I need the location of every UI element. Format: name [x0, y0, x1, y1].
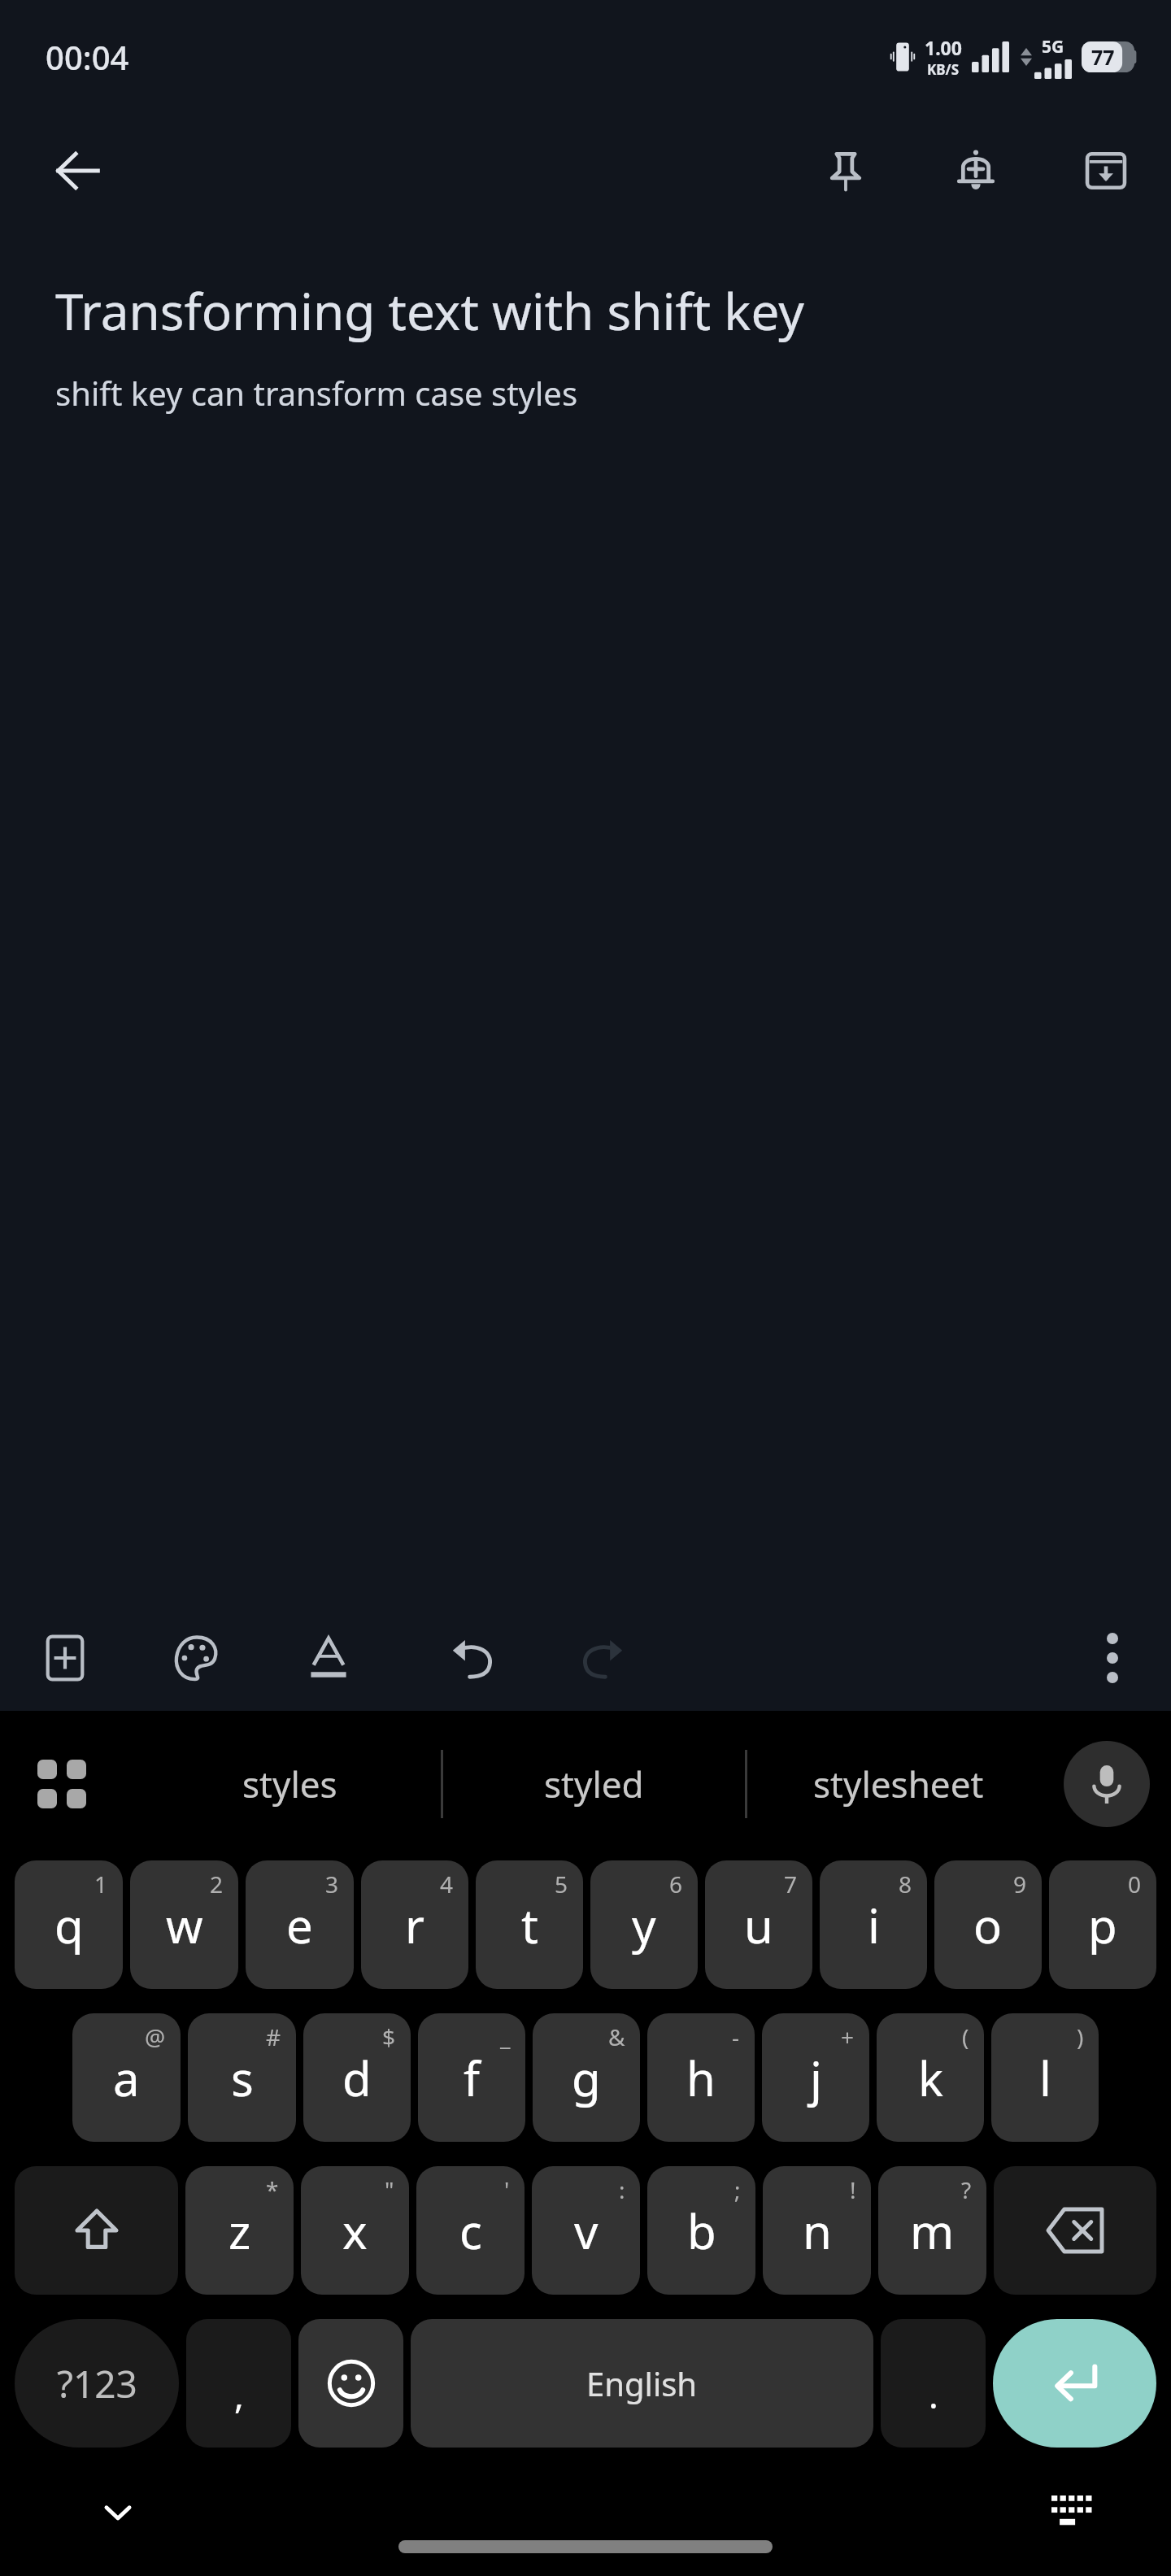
staticText: 00:04 [46, 35, 129, 79]
staticText: z [229, 2199, 251, 2263]
button[interactable]: Space [411, 2319, 873, 2448]
staticText: shift key can transform case styles [55, 371, 578, 415]
staticText: 7 [784, 1869, 798, 1899]
button[interactable]: Enter [993, 2319, 1156, 2448]
button[interactable]: Emoji [298, 2319, 403, 2448]
button[interactable]: u [705, 1860, 812, 1989]
button[interactable]: Shift [15, 2166, 178, 2295]
staticText: 6 [669, 1869, 683, 1899]
staticText: o [973, 1893, 1003, 1957]
button[interactable]: Undo [431, 1617, 512, 1699]
button[interactable]: l [991, 2013, 1099, 2142]
button[interactable]: More options [1072, 1617, 1153, 1699]
staticText: & [608, 2021, 625, 2052]
staticText: w [166, 1893, 203, 1957]
button[interactable]: x [301, 2166, 409, 2295]
button[interactable]: Background colour [156, 1617, 237, 1699]
staticText: 1 [94, 1869, 108, 1899]
button[interactable]: d [303, 2013, 411, 2142]
button[interactable]: g [533, 2013, 640, 2142]
staticText: , [234, 2370, 244, 2419]
button[interactable]: Pin [803, 128, 888, 213]
staticText: a [113, 2046, 140, 2110]
button[interactable]: j [762, 2013, 869, 2142]
staticText: e [286, 1893, 313, 1957]
staticText: k [918, 2046, 943, 2110]
button[interactable]: Redo [563, 1617, 644, 1699]
button[interactable]: b [647, 2166, 755, 2295]
staticText: 3 [325, 1869, 339, 1899]
button[interactable]: m [878, 2166, 986, 2295]
staticText: b [687, 2199, 716, 2263]
staticText: English [586, 2361, 698, 2405]
staticText: Transforming text with shift key [55, 276, 804, 345]
staticText: @ [145, 2021, 166, 2052]
staticText: c [459, 2199, 482, 2263]
staticText: _ [500, 2021, 511, 2052]
staticText: s [231, 2046, 254, 2110]
staticText: ! [850, 2174, 856, 2205]
button[interactable]: c [416, 2166, 525, 2295]
staticText: styled [544, 1760, 644, 1808]
staticText: t [521, 1893, 538, 1957]
button[interactable]: Symbols [15, 2319, 179, 2448]
button[interactable]: r [361, 1860, 468, 1989]
staticText: j [810, 2046, 822, 2110]
button[interactable]: Comma [186, 2319, 291, 2448]
button[interactable]: Archive [1064, 128, 1148, 213]
button[interactable]: k [877, 2013, 984, 2142]
staticText: q [54, 1893, 84, 1957]
staticText: n [803, 2199, 832, 2263]
staticText: " [385, 2174, 394, 2205]
button[interactable]: Period [881, 2319, 986, 2448]
button[interactable]: Add [24, 1617, 106, 1699]
button[interactable]: o [934, 1860, 1042, 1989]
staticText: u [744, 1893, 773, 1957]
button[interactable]: Text format [288, 1617, 369, 1699]
button[interactable]: stylesheet [747, 1711, 1049, 1857]
button[interactable]: n [763, 2166, 871, 2295]
button[interactable]: h [647, 2013, 755, 2142]
staticText: d [342, 2046, 372, 2110]
staticText: g [572, 2046, 601, 2110]
button[interactable]: w [130, 1860, 238, 1989]
staticText: 77 [1091, 43, 1115, 71]
button[interactable]: p [1049, 1860, 1156, 1989]
button[interactable]: Hide keyboard [81, 2475, 155, 2548]
staticText: x [342, 2199, 368, 2263]
button[interactable]: i [820, 1860, 927, 1989]
staticText: styles [242, 1760, 337, 1808]
button[interactable]: Add reminder [934, 128, 1018, 213]
staticText: 9 [1013, 1869, 1027, 1899]
staticText: 4 [440, 1869, 454, 1899]
button[interactable]: a [72, 2013, 181, 2142]
button[interactable]: styles [138, 1711, 441, 1857]
staticText: ?123 [57, 2358, 137, 2409]
staticText: p [1088, 1893, 1117, 1957]
staticText: # [266, 2021, 281, 2052]
button[interactable]: Backspace [994, 2166, 1156, 2295]
button[interactable]: z [185, 2166, 294, 2295]
staticText: ) [1077, 2021, 1084, 2052]
button[interactable]: y [590, 1860, 698, 1989]
staticText: KB/S [927, 60, 960, 79]
staticText: stylesheet [813, 1760, 984, 1808]
button[interactable]: Back [33, 125, 124, 216]
button[interactable]: v [532, 2166, 640, 2295]
staticText: + [841, 2021, 855, 2052]
button[interactable]: Switch keyboard [1038, 2475, 1111, 2548]
button[interactable]: t [476, 1860, 583, 1989]
button[interactable]: f [418, 2013, 525, 2142]
button[interactable]: Toolbar [20, 1742, 104, 1826]
button[interactable]: styled [443, 1711, 745, 1857]
staticText: $ [382, 2021, 396, 2052]
staticText: 1.00 [925, 35, 962, 60]
button[interactable]: Voice input [1064, 1741, 1150, 1827]
button[interactable]: e [246, 1860, 354, 1989]
button[interactable]: s [188, 2013, 296, 2142]
button[interactable]: q [15, 1860, 123, 1989]
staticText: 8 [899, 1869, 912, 1899]
staticText: ( [962, 2021, 969, 2052]
staticText: r [405, 1893, 424, 1957]
staticText: ' [504, 2174, 510, 2205]
